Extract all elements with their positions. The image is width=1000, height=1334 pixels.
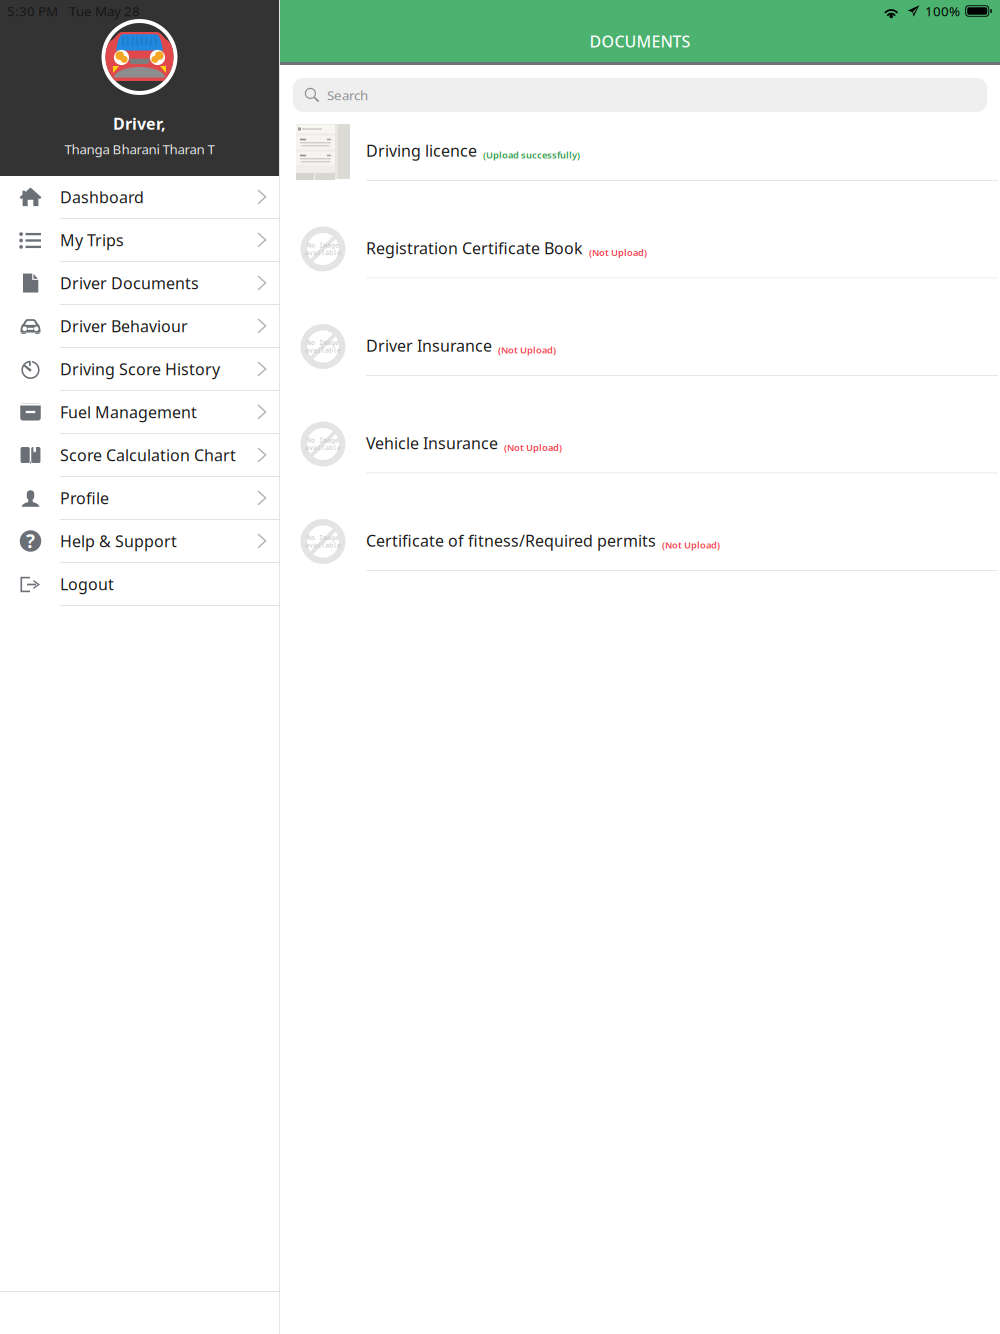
staticText: available <box>305 541 341 549</box>
staticText: No Image <box>307 534 339 541</box>
staticText: (Not Upload) <box>498 344 556 356</box>
staticText: Driving licence <box>366 140 477 161</box>
button[interactable]: No Image <box>280 473 1000 571</box>
staticText: ? <box>26 529 35 553</box>
staticText: available <box>305 444 341 452</box>
button[interactable]: Dashboard <box>0 176 279 219</box>
staticText: Dashboard <box>60 186 144 208</box>
staticText: available <box>305 346 341 354</box>
button[interactable]: Logout <box>0 563 279 606</box>
staticText: Tue May 28 <box>69 2 140 20</box>
staticText: 5:30 PM <box>7 2 58 20</box>
button[interactable]: No Image <box>280 376 1000 473</box>
button[interactable]: Search <box>293 78 987 112</box>
staticText: 100% <box>925 2 960 20</box>
staticText: (Upload successfully) <box>483 149 580 161</box>
staticText: Search <box>327 86 368 104</box>
staticText: Driver, <box>113 113 166 134</box>
button[interactable]: Fuel Management <box>0 391 279 434</box>
staticText: (Not Upload) <box>662 539 720 551</box>
staticText: My Trips <box>60 229 124 251</box>
staticText: No Image <box>307 436 339 444</box>
staticText: available <box>305 249 341 257</box>
staticText: Driver Behaviour <box>60 315 188 337</box>
staticText: DOCUMENTS <box>589 31 690 52</box>
staticText: Driver Documents <box>60 272 199 294</box>
staticText: Fuel Management <box>60 401 197 423</box>
button[interactable]: Profile <box>0 477 279 520</box>
staticText: Registration Certificate Book <box>366 237 583 259</box>
staticText: (Not Upload) <box>504 441 562 454</box>
staticText: (Not Upload) <box>589 246 647 259</box>
button[interactable]: No Image <box>280 181 1000 278</box>
staticText: Logout <box>60 573 114 595</box>
button[interactable]: Driver Documents <box>0 262 279 305</box>
button[interactable]: Driver Behaviour <box>0 305 279 348</box>
staticText: No Image <box>307 241 339 249</box>
staticText: Profile <box>60 487 109 509</box>
staticText: Thanga Bharani Tharan T <box>64 140 214 158</box>
button[interactable]: Driving licence <box>280 112 1000 181</box>
button[interactable]: Driving Score History <box>0 348 279 391</box>
button[interactable]: My Trips <box>0 219 279 262</box>
staticText: Vehicle Insurance <box>366 432 498 454</box>
staticText: Certificate of fitness/Required permits <box>366 530 656 551</box>
staticText: Driving Score History <box>60 358 220 380</box>
staticText: No Image <box>307 339 339 346</box>
staticText: Driver Insurance <box>366 335 492 356</box>
button[interactable]: No Image <box>280 278 1000 376</box>
button[interactable]: Score Calculation Chart <box>0 434 279 477</box>
staticText: Score Calculation Chart <box>60 444 236 466</box>
staticText: Help & Support <box>60 530 177 552</box>
button[interactable]: ? <box>0 520 279 563</box>
